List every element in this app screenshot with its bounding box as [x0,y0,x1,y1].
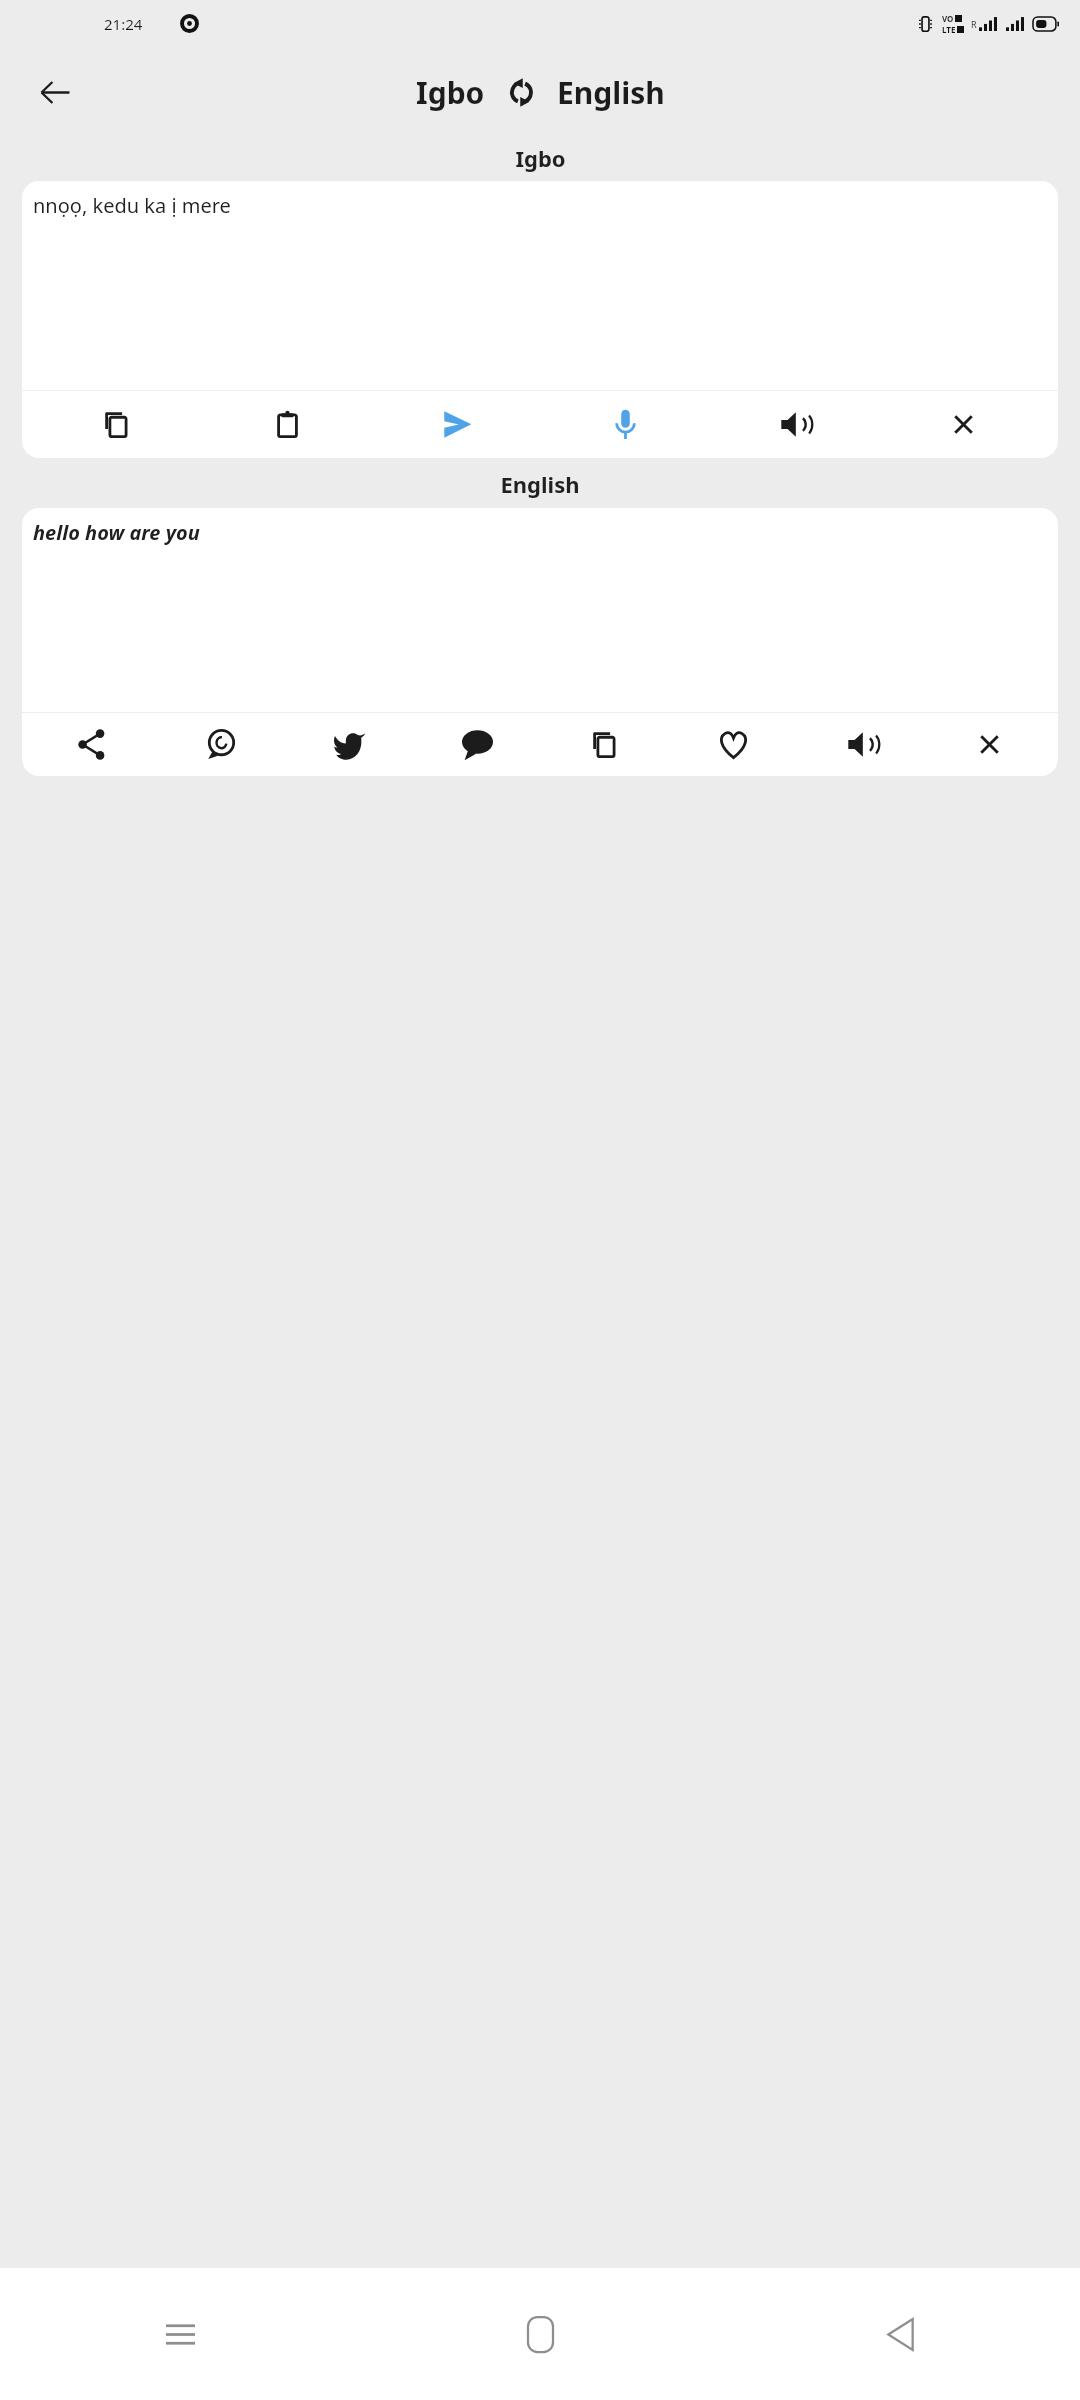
staticText: LTE [942,24,956,35]
button[interactable]: Paste [202,391,372,458]
button[interactable]: Clear [925,713,1053,776]
button[interactable]: Copy [32,391,202,458]
button[interactable]: Twitter [285,713,413,776]
button[interactable]: Speak [710,391,879,458]
button[interactable]: English [557,72,665,113]
button[interactable]: Recent apps [0,2268,360,2400]
button[interactable]: Favourite [669,713,797,776]
button[interactable]: Share [27,713,156,776]
button[interactable]: nnọọ, kedu ka ị mere [22,181,1058,390]
staticText: hello how are you [33,519,200,546]
button[interactable]: hello how are you [22,508,1058,712]
button[interactable]: Voice input [541,391,710,458]
button[interactable]: Home [360,2268,720,2400]
staticText: Igbo [515,143,566,173]
button[interactable]: Swap languages [499,70,543,114]
button[interactable]: Clear [879,391,1048,458]
button[interactable]: Copy [541,713,669,776]
button[interactable]: Back [28,65,82,119]
staticText: nnọọ, kedu ka ị mere [33,192,231,219]
button[interactable]: WhatsApp [156,713,285,776]
button[interactable]: Igbo [416,72,485,113]
button[interactable]: Speak [797,713,925,776]
staticText: 21:24 [104,14,143,34]
staticText: English [500,469,580,499]
staticText: VO [942,13,954,24]
button[interactable]: Back [720,2268,1080,2400]
button[interactable]: Translate [372,391,541,458]
staticText: R [971,18,977,30]
button[interactable]: SMS [413,713,541,776]
